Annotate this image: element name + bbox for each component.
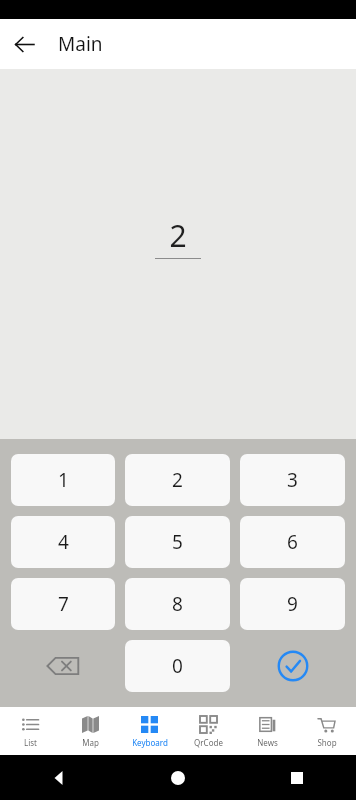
button[interactable]: News [238,711,297,752]
button[interactable]: 7 [11,578,115,630]
button[interactable]: Map [60,711,120,752]
staticText: 0 [172,653,183,679]
staticText: 8 [172,591,183,617]
button[interactable]: 9 [240,578,345,630]
staticText: 3 [287,467,298,493]
button[interactable]: 5 [125,516,230,568]
staticText: 9 [287,591,298,617]
staticText: 4 [58,529,69,555]
button[interactable]: 2 [125,454,230,506]
staticText: 7 [58,591,69,617]
staticText: Shop [317,737,337,748]
staticText: 1 [58,467,69,493]
staticText: 2 [169,215,187,256]
button[interactable]: Keyboard [120,711,179,752]
button[interactable]: 3 [240,454,345,506]
button[interactable]: QrCode [179,711,238,752]
button[interactable]: 4 [11,516,115,568]
button[interactable]: 1 [11,454,115,506]
staticText: News [257,737,278,748]
button[interactable]: Confirm [240,640,345,692]
button[interactable]: 8 [125,578,230,630]
button[interactable]: 6 [240,516,345,568]
button[interactable]: Backspace [11,640,115,692]
staticText: List [24,737,37,748]
staticText: 6 [287,529,298,555]
staticText: Main [58,31,103,57]
button[interactable]: Shop [297,711,356,752]
staticText: Keyboard [132,737,168,748]
staticText: QrCode [194,737,223,748]
staticText: 2 [172,467,183,493]
button[interactable]: List [0,711,60,752]
button[interactable]: 0 [125,640,230,692]
staticText: 5 [172,529,183,555]
staticText: Map [82,737,99,748]
button[interactable]: Back [0,20,48,68]
